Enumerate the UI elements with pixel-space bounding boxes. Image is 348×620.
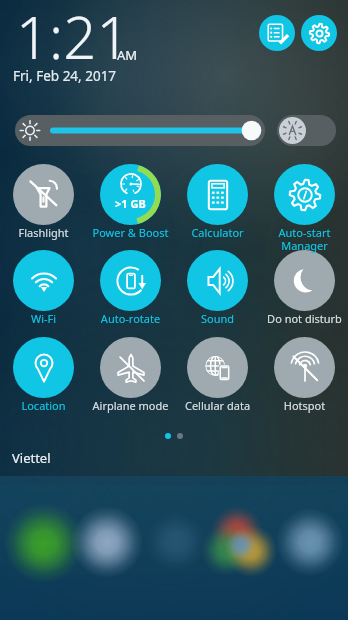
staticText: Wi-Fi	[0, 311, 87, 326]
staticText: Viettel	[12, 449, 51, 467]
staticText: 1:21	[16, 0, 130, 76]
staticText: Fri, Feb 24, 2017	[13, 67, 117, 85]
staticText: Do not disturb	[261, 311, 348, 326]
staticText: Auto-rotate	[87, 311, 174, 326]
button[interactable]: Auto brightness	[277, 115, 336, 146]
button[interactable]: Edit quick settings	[259, 15, 295, 51]
button[interactable]: Power & Boost	[100, 164, 161, 225]
staticText: >1 GB	[115, 196, 146, 211]
button[interactable]: Auto-start Manager	[274, 164, 335, 225]
button[interactable]: Flashlight	[13, 164, 74, 225]
button[interactable]: Hotspot	[274, 337, 335, 398]
staticText: Flashlight	[0, 225, 87, 240]
staticText: Sound	[174, 311, 261, 326]
staticText: Location	[0, 398, 87, 413]
button[interactable]: Brightness	[15, 115, 265, 146]
button[interactable]: Airplane mode	[100, 337, 161, 398]
button[interactable]: Wi-Fi	[13, 250, 74, 311]
staticText: AM	[117, 46, 138, 64]
staticText: Power & Boost	[87, 225, 174, 240]
button[interactable]: Auto-rotate	[100, 250, 161, 311]
staticText: Hotspot	[261, 398, 348, 413]
button[interactable]: Location	[13, 337, 74, 398]
button[interactable]: Sound	[187, 250, 248, 311]
staticText: Calculator	[174, 225, 261, 240]
staticText: Airplane mode	[87, 398, 174, 413]
button[interactable]: Do not disturb	[274, 250, 335, 311]
button[interactable]: Cellular data	[187, 337, 248, 398]
button[interactable]: Settings	[301, 15, 337, 51]
button[interactable]: Calculator	[187, 164, 248, 225]
staticText: Cellular data	[174, 398, 261, 413]
staticText: Auto-start Manager	[261, 225, 348, 253]
